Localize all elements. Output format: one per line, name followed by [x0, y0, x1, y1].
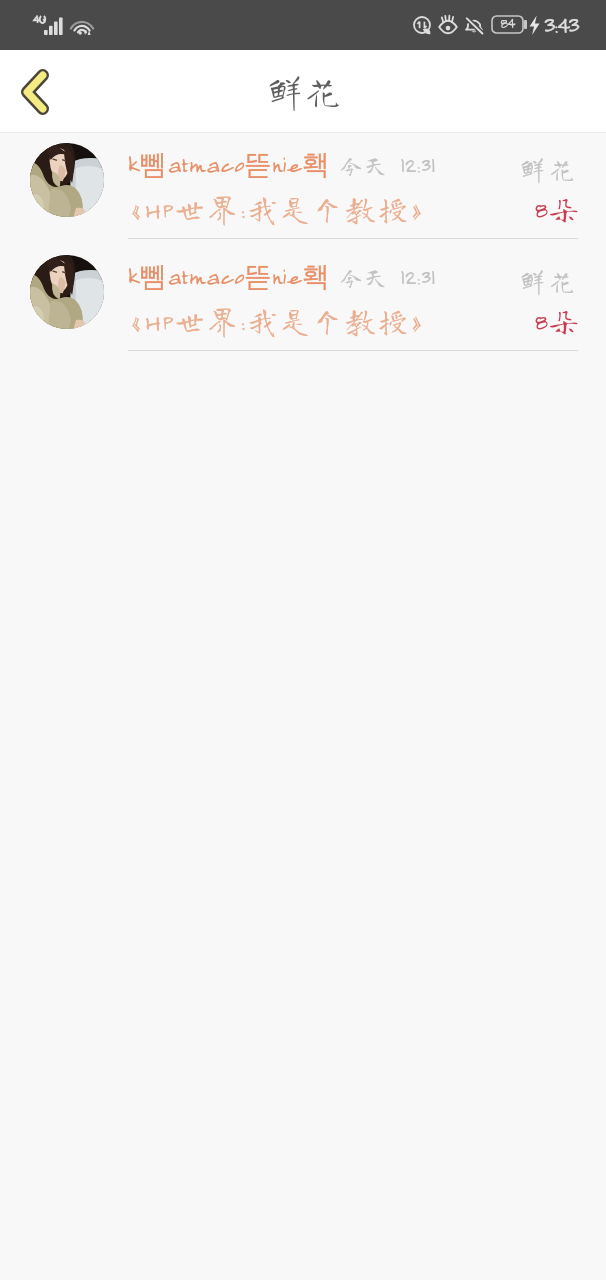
- staticText: k뻼atmaco뜯nie홱: [127, 147, 330, 182]
- staticText: 《HP世界:我是个教授》: [112, 306, 444, 336]
- staticText: k뻼atmaco뜯nie홱: [127, 259, 330, 294]
- staticText: 8朵: [534, 194, 581, 224]
- staticText: 今天 12:31: [339, 153, 436, 177]
- button[interactable]: Back: [7, 64, 63, 120]
- staticText: 鲜花: [519, 155, 579, 182]
- staticText: 3:43: [543, 9, 578, 38]
- button[interactable]: k뻼atmaco뜯nie홱: [0, 133, 606, 245]
- staticText: 今天 12:31: [339, 265, 436, 289]
- button[interactable]: k뻼atmaco뜯nie홱: [0, 245, 606, 357]
- staticText: 《HP世界:我是个教授》: [112, 194, 444, 224]
- staticText: 84: [500, 14, 515, 31]
- staticText: 鲜花: [519, 267, 579, 294]
- staticText: 8朵: [534, 306, 581, 336]
- staticText: 鲜花: [266, 72, 343, 110]
